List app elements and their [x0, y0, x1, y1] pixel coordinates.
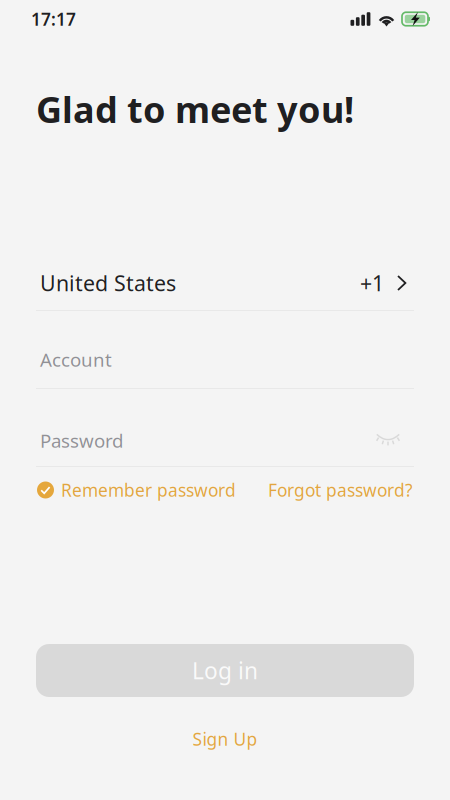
staticText: 17:17 — [31, 7, 76, 30]
button[interactable]: Log in — [36, 644, 414, 697]
staticText: +1 — [360, 269, 384, 297]
staticText: United States — [40, 269, 176, 297]
button[interactable]: Sign Up — [0, 728, 450, 750]
button[interactable]: United States — [0, 256, 450, 310]
staticText: Remember password — [61, 478, 236, 501]
staticText: Forgot password? — [268, 478, 413, 501]
staticText: Account — [40, 347, 112, 372]
staticText: Sign Up — [192, 727, 257, 750]
button[interactable]: Remember password — [37, 478, 236, 501]
button[interactable]: Forgot password? — [268, 478, 413, 501]
button[interactable]: Account — [0, 311, 450, 388]
staticText: Log in — [192, 655, 258, 685]
button[interactable]: Password — [40, 428, 123, 466]
staticText: Password — [40, 428, 123, 453]
staticText: Glad to meet you! — [36, 85, 354, 133]
button[interactable]: Show password — [360, 421, 402, 466]
